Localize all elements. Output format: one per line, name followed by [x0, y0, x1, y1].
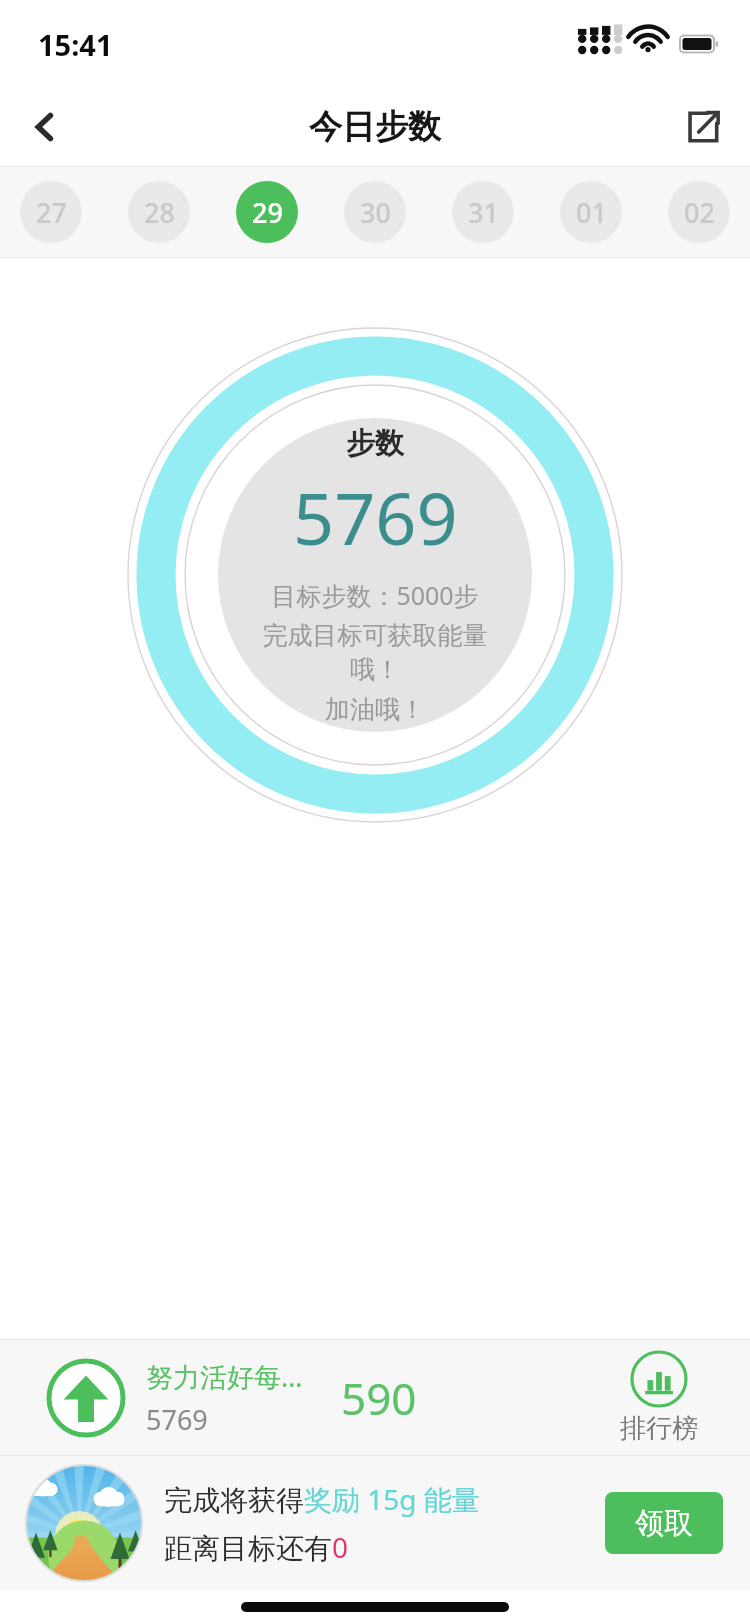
button[interactable]: 01: [560, 181, 622, 243]
staticText: 今日步数: [309, 106, 441, 148]
button[interactable]: Steps: [46, 1358, 126, 1438]
button[interactable]: 29: [236, 181, 298, 243]
staticText: 29: [252, 194, 283, 231]
staticText: 27: [36, 194, 67, 231]
button[interactable]: 30: [344, 181, 406, 243]
staticText: 15:41: [38, 25, 113, 64]
staticText: 02: [684, 194, 715, 231]
staticText: 努力活好每…: [146, 1358, 303, 1395]
staticText: 距离目标还有0: [164, 1528, 349, 1566]
staticText: 30: [360, 194, 391, 231]
button[interactable]: 排行榜: [620, 1350, 698, 1445]
button[interactable]: 28: [128, 181, 190, 243]
staticText: 排行榜: [620, 1412, 698, 1445]
staticText: 31: [468, 194, 499, 231]
button[interactable]: Back: [0, 88, 90, 166]
button[interactable]: 领取: [605, 1492, 723, 1554]
staticText: 5769: [293, 468, 458, 566]
staticText: 加油哦！: [325, 694, 425, 725]
staticText: 领取: [635, 1505, 693, 1542]
staticText: 28: [144, 194, 175, 231]
button[interactable]: Share: [656, 88, 750, 166]
staticText: 步数: [346, 425, 404, 462]
button[interactable]: 27: [20, 181, 82, 243]
staticText: 完成目标可获取能量哦！: [240, 620, 510, 686]
button[interactable]: 31: [452, 181, 514, 243]
staticText: 01: [576, 194, 607, 231]
button[interactable]: 02: [668, 181, 730, 243]
staticText: 590: [341, 1368, 417, 1428]
staticText: 5769: [146, 1401, 208, 1438]
staticText: 目标步数：5000步: [271, 578, 479, 612]
staticText: 完成将获得奖励 15g 能量: [164, 1480, 480, 1518]
